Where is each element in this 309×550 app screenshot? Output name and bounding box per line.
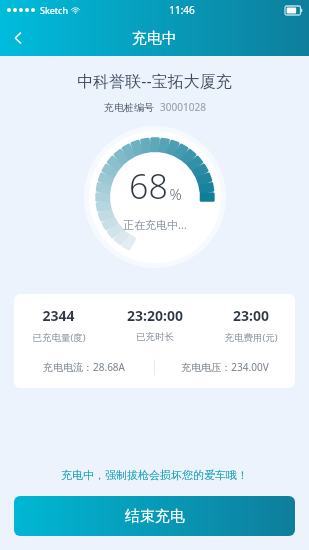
staticText: 充电中 — [132, 29, 177, 48]
staticText: 充电电流：28.68A — [43, 360, 125, 374]
staticText: 正在充电中... — [123, 217, 187, 232]
staticText: 已充电量(度) — [32, 331, 86, 344]
staticText: 30001028 — [160, 100, 206, 114]
staticText: 已充时长 — [136, 331, 174, 343]
staticText: 23:00 — [233, 306, 269, 325]
staticText: % — [169, 184, 182, 204]
staticText: 68 — [129, 163, 168, 209]
staticText: Sketch — [40, 4, 68, 16]
staticText: 充电费用(元) — [224, 331, 278, 344]
staticText: 充电中，强制拔枪会损坏您的爱车哦！ — [61, 468, 248, 482]
button[interactable]: Back — [0, 20, 36, 56]
staticText: 充电桩编号 — [104, 101, 154, 114]
staticText: 结束充电 — [125, 507, 185, 526]
staticText: 2344 — [42, 306, 75, 325]
staticText: 23:20:00 — [127, 306, 183, 325]
button[interactable]: 结束充电 — [14, 496, 295, 536]
staticText: 充电电压：234.00V — [181, 360, 269, 374]
staticText: 11:46 — [169, 3, 195, 17]
staticText: 中科誉联--宝拓大厦充 — [77, 70, 232, 92]
